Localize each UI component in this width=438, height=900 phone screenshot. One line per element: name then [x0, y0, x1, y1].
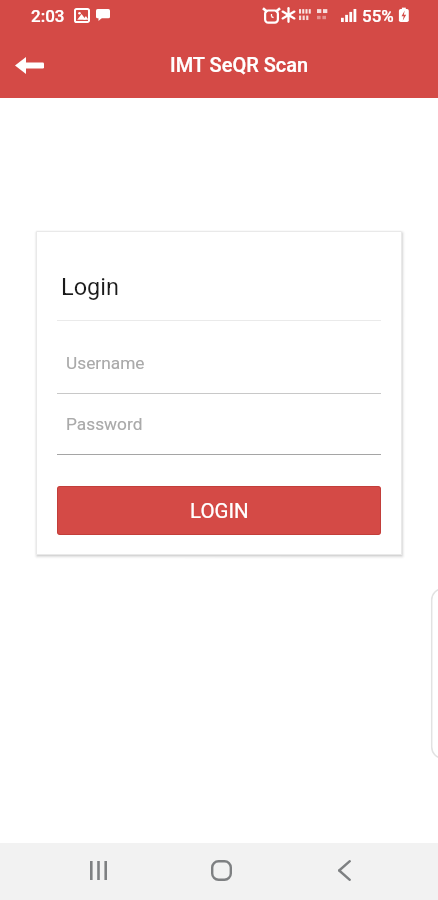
- button[interactable]: Home: [189, 842, 253, 899]
- staticText: Username: [66, 353, 145, 373]
- button[interactable]: Back: [312, 842, 376, 899]
- staticText: Password: [66, 414, 143, 434]
- button[interactable]: LOGIN: [57, 486, 381, 535]
- staticText: IMT SeQR Scan: [170, 53, 309, 76]
- staticText: 2:03: [31, 6, 65, 26]
- button[interactable]: Back: [5, 41, 53, 89]
- staticText: 55%: [362, 6, 394, 26]
- button[interactable]: Recent apps: [66, 842, 130, 899]
- staticText: LOGIN: [190, 499, 249, 523]
- staticText: Login: [61, 273, 119, 301]
